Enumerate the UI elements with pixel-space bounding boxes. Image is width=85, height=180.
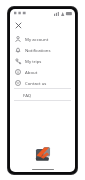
staticText: My trips <box>25 58 42 64</box>
button[interactable]: My trips <box>10 55 75 66</box>
staticText: Notifications <box>25 47 51 53</box>
button[interactable]: My account <box>10 33 75 44</box>
staticText: FAQ <box>23 92 32 98</box>
staticText: My account <box>25 36 49 42</box>
staticText: About <box>25 69 38 75</box>
staticText: Contact us <box>25 80 47 86</box>
button[interactable]: Contact us <box>10 77 75 88</box>
button[interactable]: About <box>10 66 75 77</box>
button[interactable]: Close <box>13 20 23 30</box>
button[interactable]: FAQ <box>10 89 75 100</box>
button[interactable]: Notifications <box>10 44 75 55</box>
